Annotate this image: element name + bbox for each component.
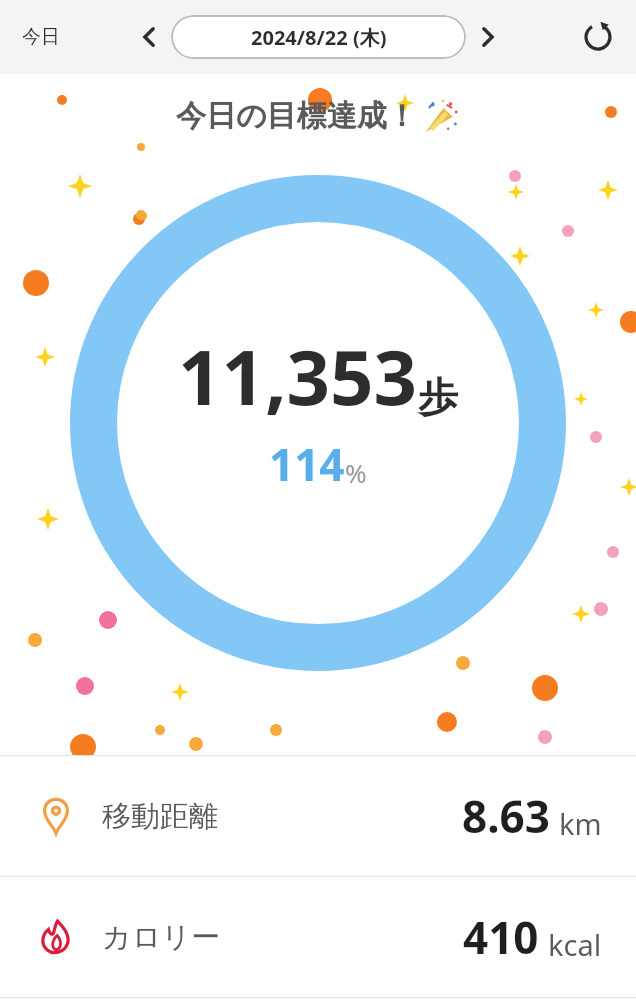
staticText: kcal: [548, 925, 602, 964]
button[interactable]: 今日: [10, 17, 72, 57]
staticText: 今日: [22, 25, 60, 49]
staticText: カロリー: [102, 919, 221, 956]
button[interactable]: Previous day: [127, 15, 171, 59]
button[interactable]: Next day: [466, 15, 510, 59]
button[interactable]: 2024/8/22 (木): [171, 15, 466, 59]
staticText: 8.63: [462, 786, 550, 846]
staticText: 今日の目標達成！: [176, 97, 417, 135]
staticText: 114: [269, 434, 345, 494]
staticText: 歩: [418, 372, 458, 422]
staticText: 410: [463, 907, 539, 967]
staticText: 2024/8/22 (木): [251, 24, 387, 51]
staticText: 11,353: [178, 324, 418, 428]
staticText: km: [559, 804, 602, 843]
button[interactable]: Refresh: [574, 13, 622, 61]
staticText: %: [345, 455, 367, 490]
staticText: 移動距離: [102, 798, 218, 835]
button[interactable]: カロリー: [0, 877, 636, 997]
button[interactable]: 移動距離: [0, 756, 636, 876]
